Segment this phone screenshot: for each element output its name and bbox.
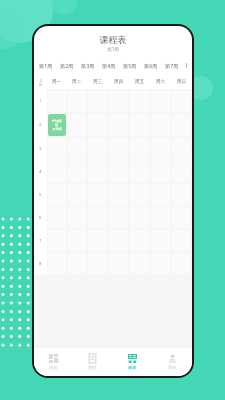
staticText: 4 [39, 169, 42, 175]
staticText: 2 [40, 78, 42, 83]
staticText: 课程表 [34, 34, 192, 45]
staticText: 第1周 [39, 62, 53, 69]
button[interactable]: 首页 [34, 348, 73, 376]
staticText: 第6周 [144, 62, 158, 69]
button[interactable]: 第6周 [140, 59, 161, 71]
staticText: 月 [39, 83, 43, 87]
staticText: 第4周 [102, 62, 116, 69]
staticText: 第3周 [81, 62, 95, 69]
button[interactable]: 第2周 [56, 59, 77, 71]
button[interactable]: 课表 [112, 348, 152, 376]
staticText: 1 [39, 98, 42, 104]
button[interactable]: 第7周 [161, 59, 182, 71]
staticText: 周六 [156, 79, 166, 85]
staticText: 础 [55, 123, 59, 127]
staticText: 我的 [168, 365, 177, 370]
button[interactable]: 护理基 [48, 114, 66, 136]
staticText: 首页 [49, 365, 58, 370]
button[interactable]: 第4周 [98, 59, 119, 71]
staticText: 课表 [128, 365, 137, 370]
staticText: 周三 [93, 79, 103, 85]
staticText: 王老师 [52, 127, 62, 131]
button[interactable]: 第1周 [36, 59, 56, 71]
staticText: 2 [39, 122, 42, 128]
staticText: 3 [39, 146, 42, 152]
staticText: 第2周 [60, 62, 74, 69]
staticText: 周五 [135, 79, 145, 85]
staticText: 5 [39, 192, 42, 198]
staticText: 周二 [72, 79, 82, 85]
staticText: 周日 [177, 79, 187, 85]
button[interactable]: 第3周 [77, 59, 98, 71]
button[interactable]: 资料 [73, 348, 112, 376]
staticText: 第5周 [123, 62, 137, 69]
staticText: 6 [39, 215, 42, 221]
button[interactable]: 我的 [152, 348, 192, 376]
staticText: 7 [39, 238, 42, 244]
button[interactable]: 第5周 [119, 59, 140, 71]
staticText: 第7周 [165, 62, 179, 69]
staticText: 第1周 [34, 46, 192, 52]
staticText: 8 [39, 261, 42, 267]
staticText: 周一 [52, 79, 62, 85]
button[interactable]: More options [182, 59, 190, 71]
staticText: 资料 [88, 365, 97, 370]
staticText: 护理基 [52, 119, 62, 123]
